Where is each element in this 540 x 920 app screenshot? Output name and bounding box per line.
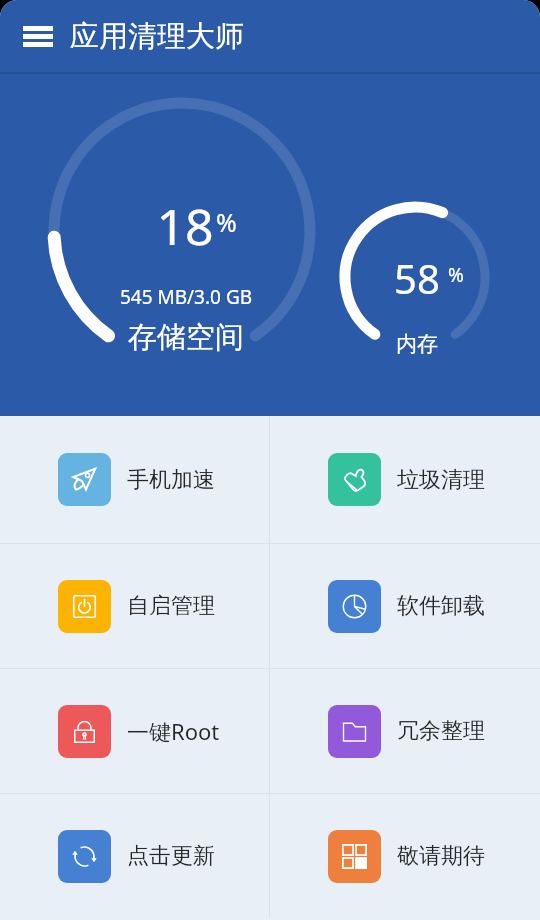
staticText: 58 [337, 251, 497, 305]
staticText: % [216, 205, 237, 239]
staticText: 敬请期待 [397, 842, 485, 870]
button[interactable]: Menu [12, 10, 64, 62]
staticText: 冗余整理 [397, 717, 485, 745]
staticText: 自启管理 [127, 592, 215, 620]
staticText: 545 MB/3.0 GB [86, 284, 286, 310]
staticText: 手机加速 [127, 466, 215, 494]
button[interactable]: 手机加速 [0, 416, 269, 543]
staticText: 一键Root [127, 716, 220, 746]
staticText: 点击更新 [127, 842, 215, 870]
button[interactable]: 敬请期待 [270, 794, 540, 918]
staticText: % [448, 262, 464, 288]
staticText: 应用清理大师 [70, 18, 244, 55]
button[interactable]: 点击更新 [0, 794, 269, 918]
staticText: 存储空间 [86, 319, 286, 356]
staticText: 18 [85, 192, 285, 260]
staticText: 垃圾清理 [397, 466, 485, 494]
button[interactable]: 垃圾清理 [270, 416, 540, 543]
button[interactable]: 自启管理 [0, 544, 269, 668]
button[interactable]: 一键Root [0, 669, 269, 793]
button[interactable]: 冗余整理 [270, 669, 540, 793]
staticText: 软件卸载 [397, 592, 485, 620]
button[interactable]: 软件卸载 [270, 544, 540, 668]
staticText: 内存 [337, 331, 497, 357]
